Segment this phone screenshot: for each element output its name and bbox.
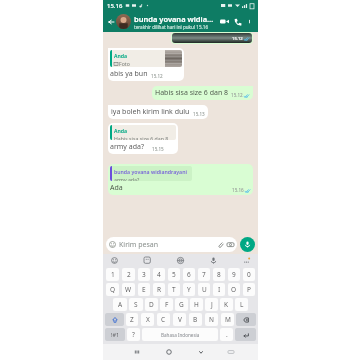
button[interactable]: Anda (110, 50, 182, 79)
staticText: U (202, 285, 207, 294)
staticText: Anda (114, 127, 128, 134)
button[interactable]: Z (126, 313, 138, 326)
button[interactable]: J (205, 298, 218, 311)
button[interactable]: M (221, 313, 234, 326)
button[interactable]: Back (105, 16, 116, 27)
staticText: bunda yovana widiandr… (134, 14, 216, 24)
staticText: N (209, 315, 214, 324)
button[interactable]: 0 (243, 268, 255, 281)
button[interactable]: G (175, 298, 188, 311)
staticText: B (193, 315, 198, 324)
button[interactable]: U (198, 283, 210, 296)
staticText: F (165, 300, 169, 309)
button[interactable]: A (113, 298, 127, 311)
button[interactable]: L (235, 298, 248, 311)
staticText: V (178, 315, 182, 324)
staticText: 7 (202, 270, 206, 279)
button[interactable]: . (220, 328, 233, 341)
other: Camera (227, 241, 234, 248)
button[interactable]: Emoji (109, 255, 120, 266)
staticText: A (118, 300, 123, 309)
button[interactable]: !#1 (105, 328, 125, 341)
staticText: 6 (187, 270, 191, 279)
button[interactable]: E (138, 283, 150, 296)
button[interactable]: Back (185, 344, 217, 360)
button[interactable]: 6 (183, 268, 195, 281)
button[interactable]: C (157, 313, 170, 326)
button[interactable]: T (168, 283, 180, 296)
button[interactable]: X (141, 313, 154, 326)
staticText: Habis sisa size 6 dan 8 (155, 88, 229, 98)
staticText: Ada (110, 183, 123, 193)
button[interactable]: W (122, 283, 135, 296)
button[interactable]: Profile photo (116, 14, 131, 29)
button[interactable]: Q (106, 283, 119, 296)
staticText: 8 (217, 270, 221, 279)
button[interactable]: 1 (106, 268, 119, 281)
button[interactable]: bunda yovana widiandrayani (110, 166, 251, 193)
button[interactable]: Video call (218, 15, 231, 28)
staticText: !#1 (111, 331, 120, 338)
staticText: T (172, 285, 176, 294)
button[interactable]: Enter (235, 328, 256, 341)
staticText: abis ya bun (110, 69, 148, 79)
button[interactable]: P (243, 283, 255, 296)
button[interactable]: Stickers (142, 255, 153, 266)
button[interactable]: V (173, 313, 186, 326)
button[interactable]: N (205, 313, 218, 326)
button[interactable]: 2 (122, 268, 135, 281)
staticText: Z (130, 315, 134, 324)
button[interactable]: iya boleh kirim link dulu (111, 107, 205, 117)
button[interactable]: Voice call (231, 15, 244, 28)
button[interactable]: ? (127, 328, 140, 341)
button[interactable]: K (220, 298, 233, 311)
staticText: Foto (119, 60, 130, 67)
staticText: 0 (247, 270, 251, 279)
button[interactable]: Home (153, 344, 185, 360)
button[interactable]: 15.12 (172, 33, 252, 43)
button[interactable]: Kirim pesan (109, 237, 234, 252)
button[interactable]: GIF (175, 255, 186, 266)
button[interactable]: Y (183, 283, 195, 296)
staticText: R (157, 285, 162, 294)
staticText: X (146, 315, 150, 324)
button[interactable]: Anda (110, 125, 176, 152)
button[interactable]: 5 (168, 268, 180, 281)
button[interactable]: D (145, 298, 158, 311)
button[interactable]: bunda yovana widiandr… (134, 11, 216, 32)
button[interactable]: Bahasa Indonesia (142, 328, 218, 341)
staticText: 2 (127, 270, 131, 279)
staticText: Habis sisa size 6 dan 8 (114, 135, 169, 140)
button[interactable]: H (190, 298, 203, 311)
button[interactable]: F (160, 298, 173, 311)
button[interactable]: Recent apps (121, 344, 153, 360)
button[interactable]: More options (244, 16, 255, 27)
staticText: army ada? (114, 176, 140, 181)
staticText: 15.15 (152, 146, 164, 152)
button[interactable]: 8 (213, 268, 225, 281)
button[interactable]: Settings (241, 255, 252, 266)
button[interactable]: Habis sisa size 6 dan 8 (155, 88, 250, 98)
button[interactable]: 9 (228, 268, 240, 281)
button[interactable]: 4 (153, 268, 165, 281)
button[interactable]: Voice input (208, 255, 219, 266)
button[interactable]: 3 (138, 268, 150, 281)
button[interactable]: Voice message (240, 237, 255, 252)
button[interactable]: I (213, 283, 225, 296)
staticText: M (225, 315, 231, 324)
button[interactable]: S (129, 298, 143, 311)
staticText: 9 (232, 270, 236, 279)
button[interactable]: B (189, 313, 202, 326)
staticText: J (211, 300, 213, 309)
staticText: W (125, 285, 132, 294)
button[interactable]: Backspace (236, 313, 256, 326)
staticText: 15.12 (151, 73, 163, 79)
button[interactable]: 7 (198, 268, 210, 281)
staticText: K (224, 300, 229, 309)
button[interactable]: R (153, 283, 165, 296)
staticText: H (194, 300, 199, 309)
button[interactable]: Shift (105, 313, 124, 326)
button[interactable]: O (228, 283, 240, 296)
other: Attach (217, 241, 224, 248)
button[interactable]: Hide keyboard (217, 344, 245, 360)
